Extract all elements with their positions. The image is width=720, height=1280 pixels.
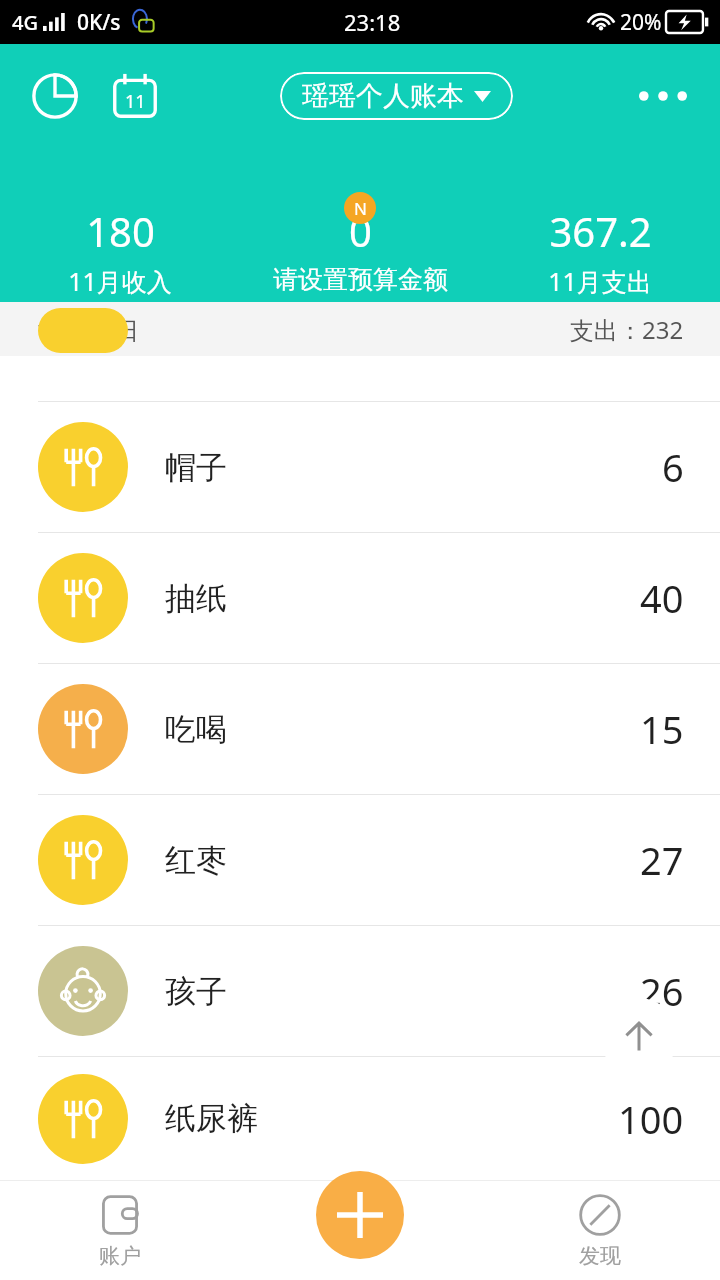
button[interactable]: 孩子 bbox=[0, 926, 720, 1056]
button[interactable]: 红枣 bbox=[0, 795, 720, 925]
button[interactable]: 180 bbox=[0, 204, 240, 298]
staticText: 0 bbox=[349, 204, 372, 258]
button[interactable]: 吃喝 bbox=[0, 664, 720, 794]
button[interactable]: More options bbox=[632, 69, 694, 123]
staticText: 4G bbox=[12, 9, 38, 36]
staticText: 发现 bbox=[579, 1243, 621, 1269]
staticText: 账户 bbox=[99, 1243, 141, 1269]
button[interactable]: Add record bbox=[316, 1171, 404, 1259]
staticText: 20% bbox=[620, 8, 662, 37]
staticText: 11月收入 bbox=[68, 264, 172, 298]
staticText: 孩子 bbox=[165, 972, 227, 1011]
button[interactable]: 367.2 bbox=[480, 204, 720, 298]
staticText: N bbox=[354, 197, 367, 220]
button[interactable]: 纸尿裤 bbox=[0, 1057, 720, 1180]
staticText: 100 bbox=[618, 1093, 684, 1145]
staticText: 红枣 bbox=[165, 841, 227, 880]
staticText: 支出：232 bbox=[570, 313, 684, 346]
button[interactable]: Charts bbox=[28, 69, 82, 123]
staticText: 吃喝 bbox=[165, 710, 227, 749]
staticText: 6 bbox=[662, 441, 684, 493]
staticText: 帽子 bbox=[165, 448, 227, 487]
staticText: 40 bbox=[640, 572, 684, 624]
button[interactable]: 抽纸 bbox=[0, 533, 720, 663]
button[interactable]: 0 bbox=[240, 204, 480, 295]
staticText: 180 bbox=[86, 204, 155, 258]
staticText: 纸尿裤 bbox=[165, 1099, 258, 1138]
staticText: 26 bbox=[640, 965, 684, 1017]
staticText: 瑶瑶个人账本 bbox=[302, 79, 464, 113]
button[interactable]: 发现 bbox=[480, 1180, 720, 1280]
button[interactable]: 瑶瑶个人账本 bbox=[280, 72, 513, 120]
button[interactable]: Scroll to top bbox=[600, 998, 678, 1076]
staticText: 11月支出 bbox=[548, 264, 652, 298]
staticText: 11月11日 bbox=[36, 313, 139, 346]
staticText: 抽纸 bbox=[165, 579, 227, 618]
button[interactable]: Calendar bbox=[108, 69, 162, 123]
staticText: 367.2 bbox=[549, 204, 652, 258]
staticText: 请设置预算金额 bbox=[273, 264, 448, 295]
button[interactable]: 帽子 bbox=[0, 402, 720, 532]
staticText: 0K/s bbox=[77, 8, 121, 37]
staticText: 23:18 bbox=[344, 7, 401, 37]
button[interactable]: 账户 bbox=[0, 1180, 240, 1280]
staticText: 11 bbox=[125, 89, 146, 114]
staticText: 27 bbox=[640, 834, 684, 886]
staticText: 15 bbox=[640, 703, 684, 755]
